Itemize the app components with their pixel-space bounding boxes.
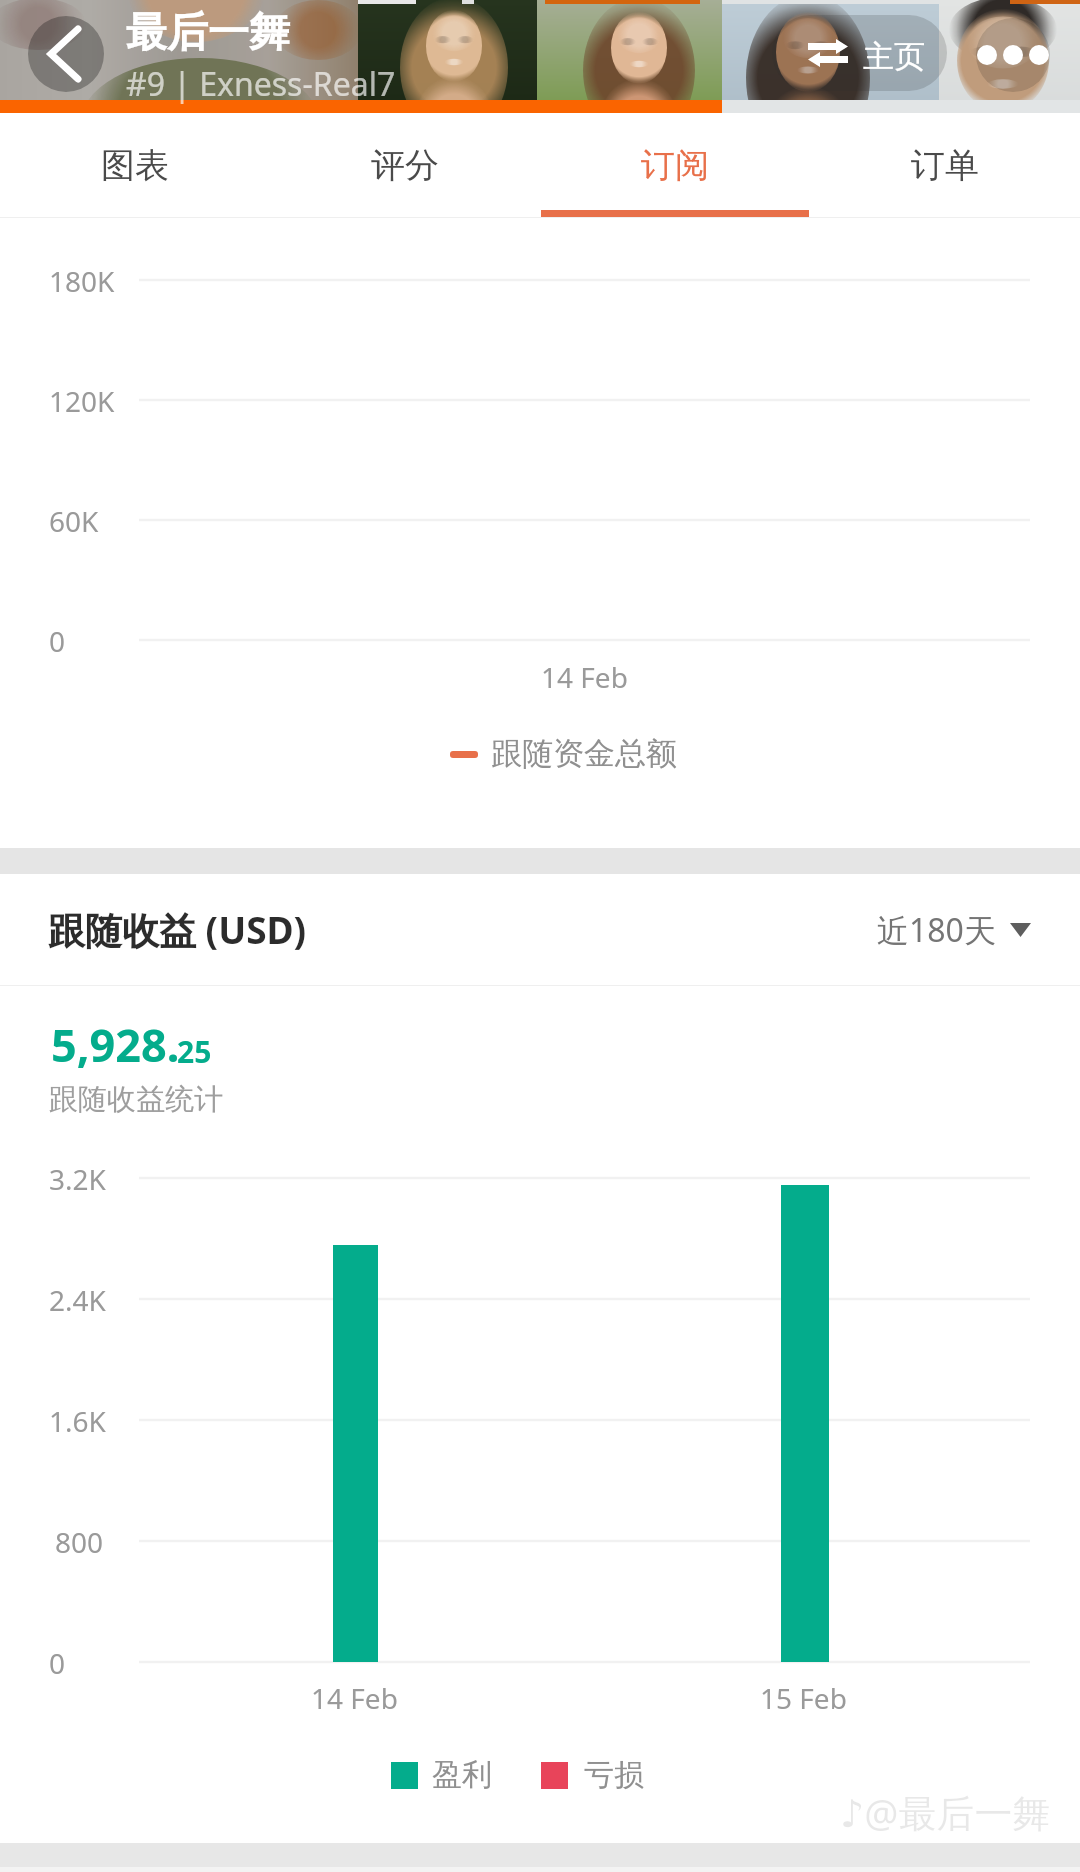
- staticText: ♪@最后一舞: [840, 1786, 1051, 1838]
- staticText: 120K: [49, 382, 115, 420]
- button[interactable]: More options: [976, 18, 1050, 92]
- staticText: 15 Feb: [760, 1679, 847, 1717]
- staticText: 25: [177, 1031, 212, 1072]
- staticText: 订单: [911, 144, 979, 187]
- button[interactable]: 订阅: [540, 113, 810, 217]
- staticText: 近180天: [877, 908, 996, 952]
- staticText: 2.4K: [49, 1281, 106, 1319]
- staticText: 跟随收益 (USD): [48, 904, 307, 955]
- staticText: 3.2K: [49, 1160, 106, 1198]
- button[interactable]: Back: [28, 16, 104, 92]
- staticText: 跟随资金总额: [491, 734, 677, 773]
- button[interactable]: 图表: [0, 113, 270, 217]
- staticText: 14 Feb: [541, 658, 628, 696]
- staticText: 5,928.: [51, 1014, 180, 1075]
- staticText: 800: [55, 1523, 104, 1561]
- staticText: 主页: [863, 37, 925, 76]
- staticText: 订阅: [641, 144, 709, 187]
- staticText: 亏损: [584, 1756, 644, 1794]
- staticText: 评分: [371, 144, 439, 187]
- staticText: 60K: [49, 502, 99, 540]
- staticText: 盈利: [432, 1756, 492, 1794]
- button[interactable]: 评分: [270, 113, 540, 217]
- staticText: 180K: [49, 262, 115, 300]
- button[interactable]: 主页: [772, 15, 947, 91]
- staticText: 0: [49, 622, 66, 660]
- button[interactable]: 订单: [810, 113, 1080, 217]
- staticText: 1.6K: [49, 1402, 106, 1440]
- staticText: 14 Feb: [311, 1679, 398, 1717]
- staticText: 0: [49, 1644, 66, 1682]
- staticText: #9 | Exness-Real7: [126, 62, 396, 106]
- staticText: 跟随收益统计: [49, 1081, 223, 1118]
- staticText: 图表: [101, 144, 169, 187]
- staticText: 最后一舞: [126, 7, 290, 59]
- button[interactable]: 近180天: [877, 908, 1032, 952]
